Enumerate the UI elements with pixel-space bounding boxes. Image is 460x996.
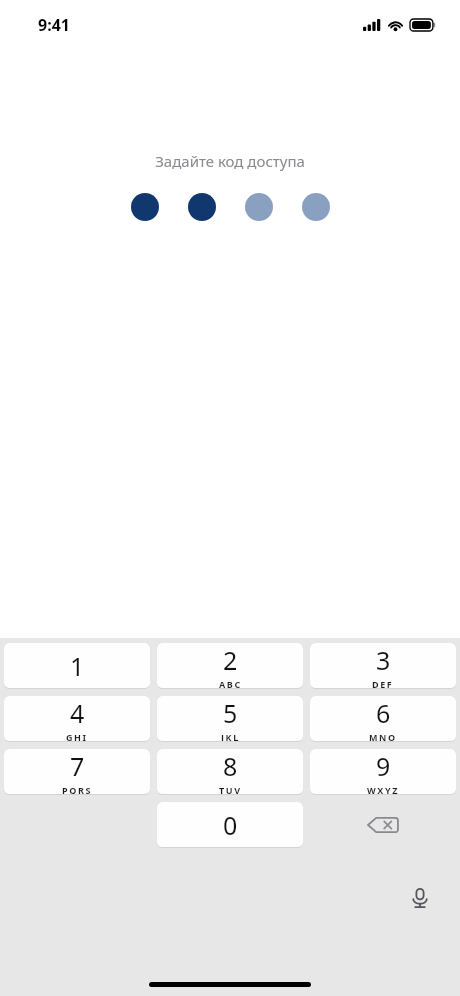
button[interactable]: 3 xyxy=(310,643,456,688)
staticText: GHI xyxy=(66,731,88,741)
staticText: DEF xyxy=(372,678,394,688)
button[interactable]: 7 xyxy=(4,749,150,794)
staticText: 2 xyxy=(223,643,238,677)
staticText: ABC xyxy=(219,678,242,688)
staticText: JKL xyxy=(221,731,240,741)
staticText: 8 xyxy=(223,749,238,783)
staticText: TUV xyxy=(219,784,242,794)
staticText: 7 xyxy=(70,749,85,783)
staticText: 5 xyxy=(223,696,238,730)
staticText: 1 xyxy=(70,649,85,683)
staticText: 4 xyxy=(70,696,85,730)
button[interactable]: 5 xyxy=(157,696,303,741)
staticText: Задайте код доступа xyxy=(155,151,305,171)
button[interactable]: Backspace xyxy=(310,802,456,848)
staticText: 3 xyxy=(376,643,391,677)
staticText: 6 xyxy=(376,696,391,730)
staticText: MNO xyxy=(369,731,397,741)
button[interactable]: 2 xyxy=(157,643,303,688)
staticText: PQRS xyxy=(62,784,92,794)
button[interactable]: 8 xyxy=(157,749,303,794)
button[interactable]: 6 xyxy=(310,696,456,741)
button[interactable]: Voice input xyxy=(402,880,438,916)
button[interactable]: 0 xyxy=(157,802,303,847)
staticText: 9:41 xyxy=(38,14,70,36)
button[interactable]: 9 xyxy=(310,749,456,794)
staticText: 9 xyxy=(376,749,391,783)
staticText: WXYZ xyxy=(367,784,399,794)
button[interactable]: 1 xyxy=(4,643,150,688)
staticText: 0 xyxy=(223,808,238,842)
button[interactable]: 4 xyxy=(4,696,150,741)
